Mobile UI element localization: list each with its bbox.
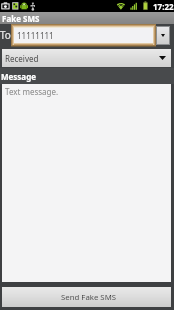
- staticText: Send Fake SMS: [61, 292, 116, 303]
- button[interactable]: 11111111: [11, 24, 156, 48]
- button[interactable]: Pick contact: [157, 27, 169, 44]
- button[interactable]: Text message.: [2, 84, 171, 282]
- staticText: To: [0, 28, 11, 42]
- staticText: Fake SMS: [2, 13, 40, 24]
- staticText: Message: [1, 71, 36, 82]
- staticText: Received: [5, 53, 39, 64]
- button[interactable]: Send Fake SMS: [2, 287, 171, 307]
- button[interactable]: Received: [2, 49, 171, 67]
- staticText: 17:22: [153, 1, 174, 12]
- staticText: Text message.: [5, 86, 59, 97]
- staticText: 11111111: [17, 30, 54, 41]
